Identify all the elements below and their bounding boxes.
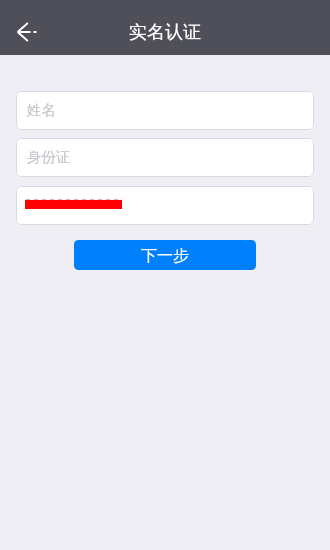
staticText: 身份证 (27, 148, 71, 166)
button[interactable]: 下一步 (74, 240, 256, 270)
button[interactable]: Back (0, 9, 46, 55)
button[interactable]: 姓名 (16, 91, 314, 130)
staticText: 姓名 (27, 101, 56, 119)
button[interactable] (16, 186, 314, 225)
staticText: 下一步 (141, 246, 189, 266)
button[interactable]: 身份证 (16, 138, 314, 177)
staticText: 实名认证 (129, 21, 201, 44)
